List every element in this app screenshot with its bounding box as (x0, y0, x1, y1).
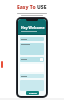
button[interactable] (20, 43, 44, 55)
staticText: USE (37, 4, 47, 11)
staticText: Hey Welcome (21, 25, 45, 30)
button[interactable]: SUBMIT (26, 91, 39, 95)
button[interactable] (20, 37, 44, 41)
staticText: SUBMIT (29, 92, 37, 95)
button[interactable] (20, 57, 44, 62)
button[interactable] (20, 74, 44, 78)
staticText: Easy To (17, 4, 36, 11)
